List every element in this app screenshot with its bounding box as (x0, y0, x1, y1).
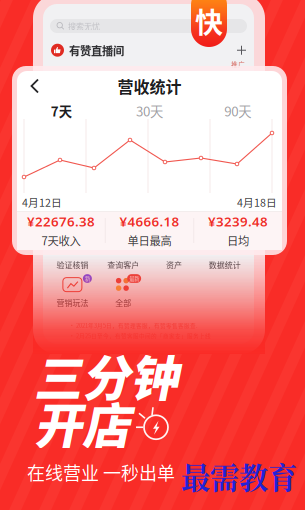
staticText: • 2月25日至今，有赞客服中间的「商家支」服务上线 (69, 332, 211, 340)
staticText: • 2021年3月5日，有赞理客服，有赞零售客服查. (69, 321, 198, 329)
button[interactable]: 30天 (105, 101, 194, 119)
staticText: 日均 (227, 232, 249, 248)
staticText: 资产 (166, 259, 182, 271)
button[interactable]: 90天 (194, 101, 282, 119)
staticText: 新 (85, 275, 90, 282)
staticText: 7天收入 (41, 232, 80, 248)
staticText: 在线营业 一秒出单 (27, 459, 175, 485)
staticText: 验证核销 (56, 259, 88, 271)
staticText: 营收统计 (117, 74, 181, 98)
staticText: 数据统计 (209, 259, 241, 271)
button[interactable]: 7天 (17, 101, 105, 119)
staticText: 有赞直播间 (69, 42, 124, 58)
staticText: 90天 (224, 101, 251, 119)
staticText: ¥3239.48 (208, 212, 268, 230)
staticText: 7天 (51, 101, 72, 119)
staticText: 三分钟 (34, 340, 178, 409)
staticText: 开店 (34, 387, 130, 457)
staticText: 单日最高 (127, 232, 171, 248)
staticText: 4月12日 (22, 194, 62, 210)
staticText: 4月18日 (237, 194, 277, 210)
staticText: 查询客户 (107, 259, 139, 271)
staticText: 搜索无忧 (68, 20, 100, 32)
staticText: 推广 (231, 59, 245, 69)
staticText: 快 (195, 1, 223, 41)
staticText: 最新 (129, 275, 139, 282)
staticText: ¥22676.38 (27, 212, 95, 230)
staticText: 全部 (115, 297, 131, 308)
staticText: ¥4666.18 (119, 212, 179, 230)
button[interactable]: Back (24, 71, 45, 100)
staticText: 30天 (136, 101, 163, 119)
staticText: 最需教育 (181, 455, 297, 497)
staticText: 营销玩法 (56, 297, 88, 308)
